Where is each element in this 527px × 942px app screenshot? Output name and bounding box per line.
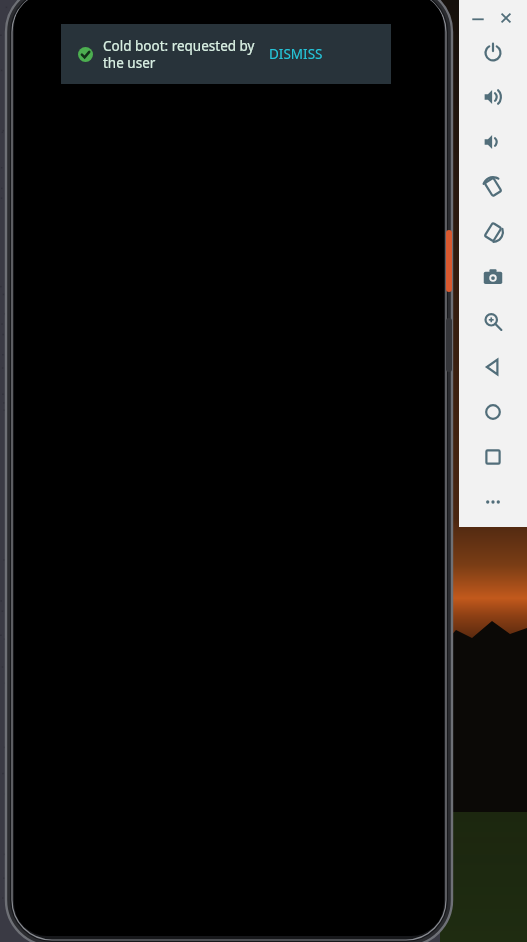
button[interactable]: Cold boot: requested by the user (61, 24, 391, 84)
button[interactable]: Power (471, 36, 515, 68)
button[interactable]: Overview (471, 441, 515, 473)
staticText: DISMISS (269, 45, 323, 63)
button[interactable]: Home (471, 396, 515, 428)
button[interactable]: Volume down (471, 126, 515, 158)
staticText: Cold boot: requested by the user (103, 37, 255, 72)
button[interactable]: Rotate left (471, 171, 515, 203)
button[interactable]: Close (493, 5, 519, 31)
button[interactable]: More options (471, 486, 515, 518)
button[interactable]: DISMISS (261, 37, 331, 71)
button[interactable]: Minimise (465, 5, 491, 31)
button[interactable]: Back (471, 351, 515, 383)
button[interactable]: Volume up (471, 81, 515, 113)
button[interactable]: Rotate right (471, 216, 515, 248)
button[interactable]: Zoom (471, 306, 515, 338)
button[interactable]: Take screenshot (471, 261, 515, 293)
